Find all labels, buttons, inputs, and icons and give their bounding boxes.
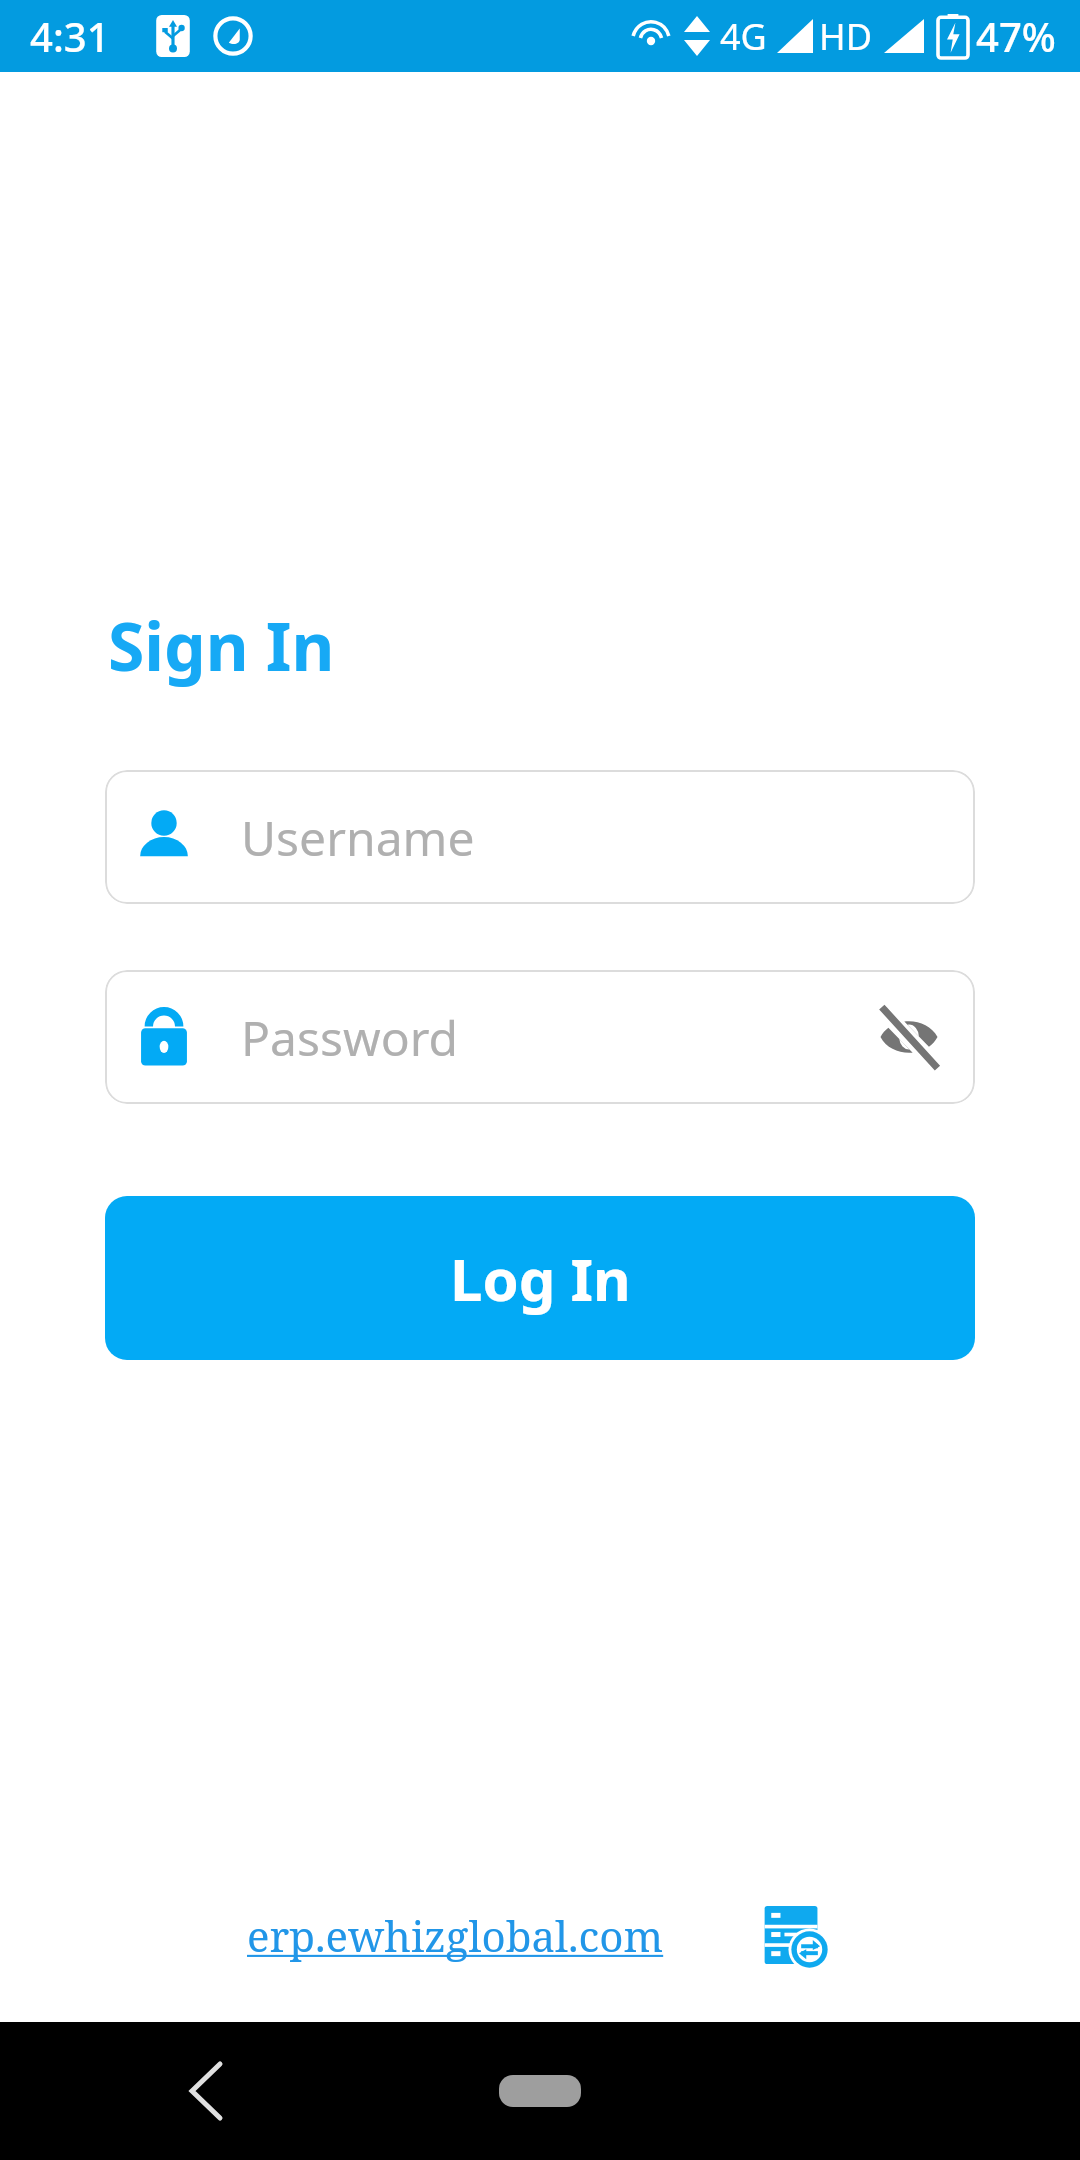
- staticText: Password: [241, 1005, 459, 1070]
- staticText: erp.ewhizglobal.com: [247, 1907, 664, 1964]
- button[interactable]: Username: [105, 770, 975, 904]
- staticText: Sign In: [108, 600, 335, 690]
- button[interactable]: Server settings: [756, 1896, 834, 1974]
- staticText: 47%: [976, 9, 1056, 63]
- staticText: 4:31: [30, 9, 110, 63]
- staticText: 4G: [720, 12, 767, 61]
- button[interactable]: Show password: [871, 999, 947, 1075]
- button[interactable]: Home: [458, 2061, 622, 2121]
- staticText: Username: [241, 805, 475, 870]
- button[interactable]: erp.ewhizglobal.com: [247, 1907, 664, 1964]
- button[interactable]: Back: [166, 2051, 246, 2131]
- staticText: Log In: [450, 1239, 631, 1318]
- button[interactable]: Log In: [105, 1196, 975, 1360]
- button[interactable]: Password: [105, 970, 975, 1104]
- staticText: HD: [819, 12, 872, 61]
